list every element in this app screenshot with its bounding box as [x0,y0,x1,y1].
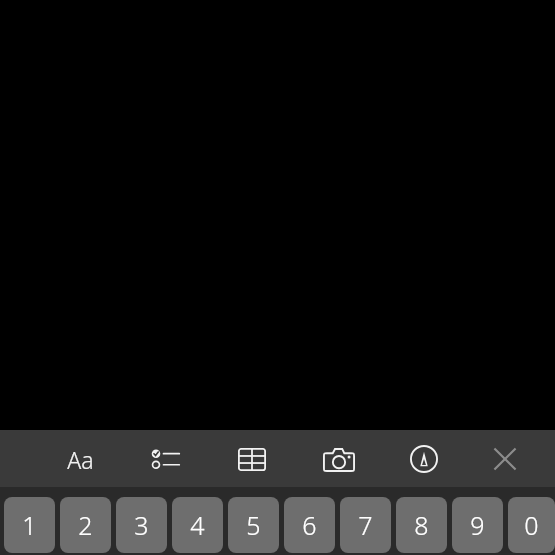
button[interactable]: 0 [508,497,555,553]
staticText: Aa [67,444,94,474]
button[interactable]: 3 [116,497,167,553]
staticText: 9 [470,508,485,542]
button[interactable]: Close [483,443,527,475]
staticText: 4 [190,508,205,542]
button[interactable]: Draw [400,442,448,476]
button[interactable]: 8 [396,497,447,553]
button[interactable]: 1 [4,497,55,553]
button[interactable]: Camera [315,443,363,475]
staticText: 2 [78,508,93,542]
staticText: 1 [22,508,37,542]
button[interactable]: Checklist [142,443,190,475]
staticText: 7 [358,508,373,542]
button[interactable]: 4 [172,497,223,553]
button[interactable]: 7 [340,497,391,553]
staticText: 3 [134,508,149,542]
button[interactable]: 2 [60,497,111,553]
staticText: 6 [302,508,317,542]
staticText: 0 [524,508,539,542]
staticText: 5 [246,508,261,542]
button[interactable]: Text formatting [54,444,106,474]
button[interactable]: 5 [228,497,279,553]
button[interactable]: 6 [284,497,335,553]
staticText: 8 [414,508,429,542]
button[interactable]: 9 [452,497,503,553]
button[interactable]: Insert table [228,443,276,475]
